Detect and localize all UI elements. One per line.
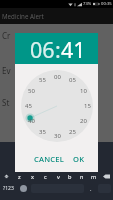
button[interactable]: 06 bbox=[30, 35, 55, 64]
button[interactable]: v bbox=[52, 171, 64, 182]
staticText: 50 bbox=[28, 87, 35, 95]
staticText: 00:35 bbox=[101, 1, 112, 7]
staticText: 25 bbox=[69, 128, 76, 136]
button[interactable]: OK bbox=[70, 151, 88, 167]
staticText: x bbox=[31, 173, 34, 181]
staticText: v bbox=[57, 173, 60, 181]
button[interactable]: . bbox=[86, 182, 96, 195]
staticText: 55 bbox=[39, 76, 46, 84]
button[interactable]: Shift bbox=[0, 171, 13, 182]
staticText: 35 bbox=[39, 128, 46, 136]
staticText: OK bbox=[73, 154, 85, 164]
staticText: c bbox=[44, 173, 47, 181]
staticText: 30 bbox=[54, 132, 61, 140]
staticText: 15 bbox=[84, 102, 91, 110]
button[interactable]: x bbox=[26, 171, 39, 182]
staticText: : bbox=[55, 35, 61, 64]
button[interactable]: n bbox=[76, 171, 88, 182]
staticText: CANCEL bbox=[34, 154, 64, 164]
staticText: Ev bbox=[2, 65, 11, 76]
staticText: Medicine Alert bbox=[2, 12, 44, 20]
staticText: 41 bbox=[61, 35, 86, 64]
button[interactable]: 41 bbox=[61, 35, 86, 64]
staticText: 73% bbox=[83, 1, 92, 7]
button[interactable]: m bbox=[88, 171, 100, 182]
button[interactable]: CANCEL bbox=[31, 151, 67, 167]
button[interactable]: z bbox=[13, 171, 26, 182]
staticText: z bbox=[18, 173, 21, 181]
button[interactable]: Backspace bbox=[100, 171, 113, 182]
staticText: . bbox=[90, 185, 92, 193]
staticText: m bbox=[91, 173, 97, 181]
staticText: 40 bbox=[28, 117, 35, 125]
staticText: St bbox=[2, 97, 10, 108]
staticText: 06 bbox=[30, 35, 55, 64]
staticText: 20 bbox=[80, 117, 87, 125]
staticText: 05 bbox=[69, 76, 76, 84]
button[interactable]: Emoji bbox=[17, 182, 29, 195]
staticText: 00 bbox=[54, 73, 61, 81]
staticText: ?123 bbox=[3, 185, 14, 192]
staticText: 10 bbox=[80, 87, 87, 95]
staticText: 45 bbox=[25, 102, 32, 110]
staticText: b bbox=[68, 173, 72, 181]
button[interactable]: b bbox=[64, 171, 76, 182]
staticText: Cr bbox=[2, 30, 11, 41]
button[interactable]: c bbox=[39, 171, 52, 182]
button[interactable]: ?123 bbox=[0, 182, 17, 195]
staticText: n bbox=[80, 173, 84, 181]
